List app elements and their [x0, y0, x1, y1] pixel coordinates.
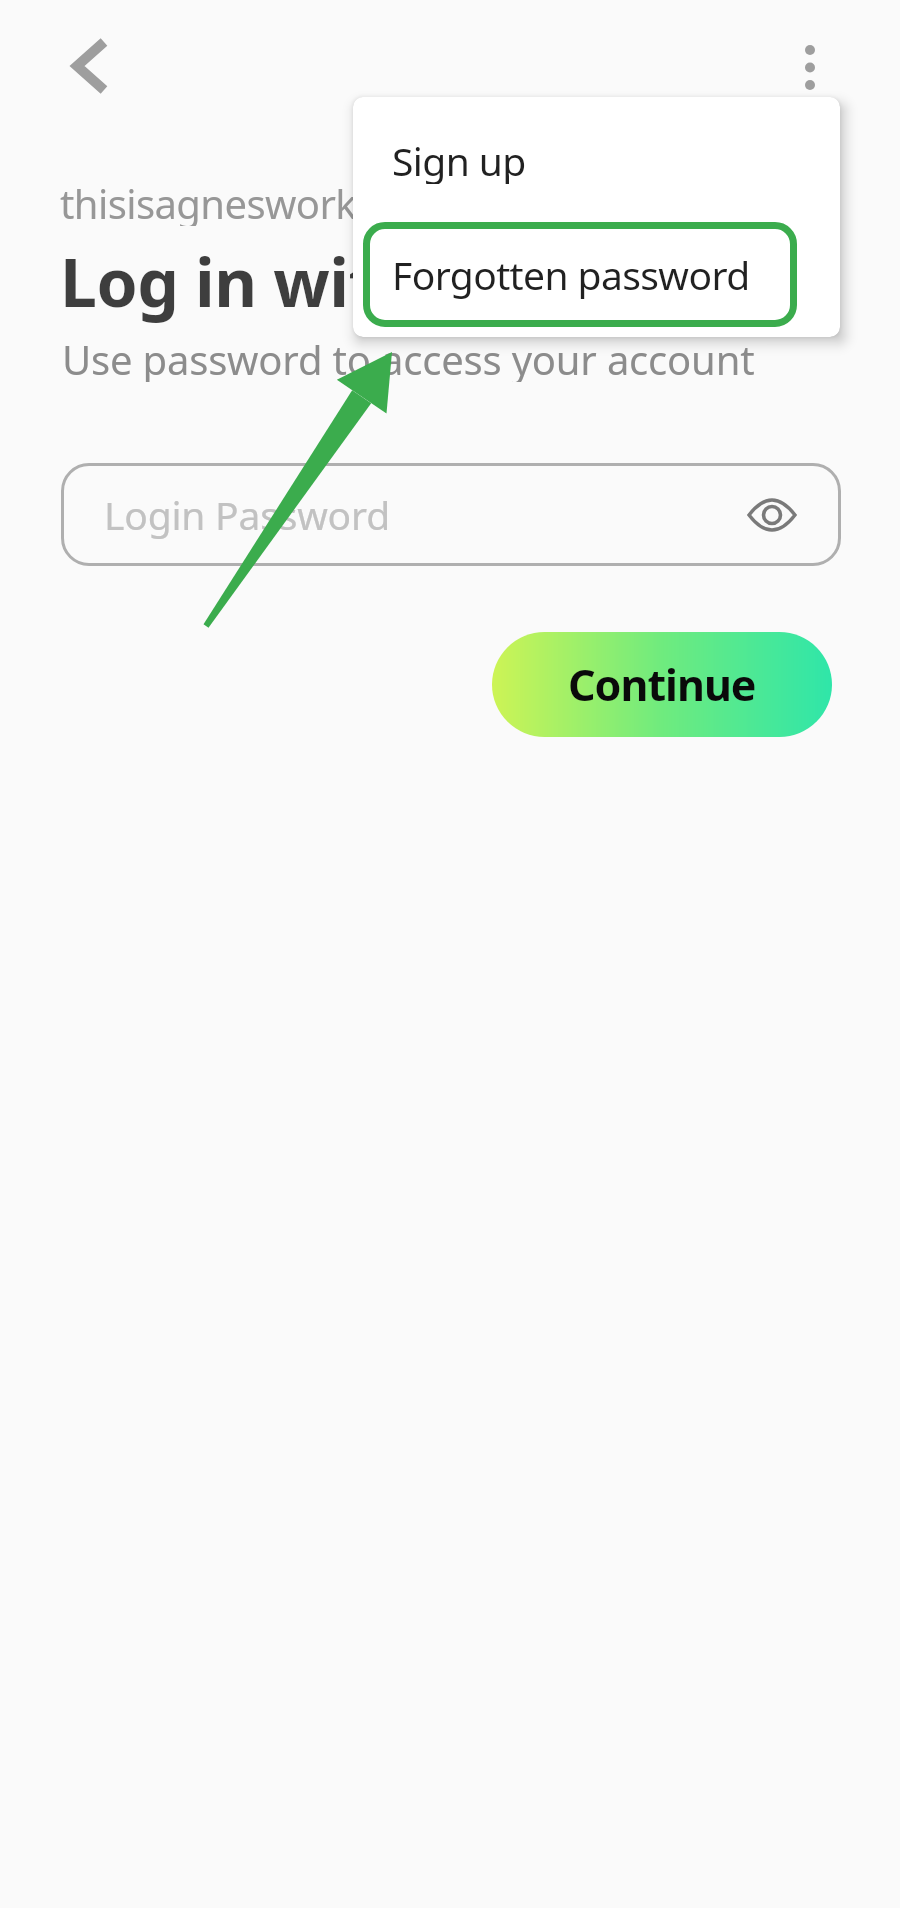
- staticText: thisisagnesworking: [60, 176, 414, 226]
- button[interactable]: Forgotten password: [363, 222, 797, 327]
- button[interactable]: Continue: [492, 632, 832, 737]
- staticText: Sign up: [392, 134, 526, 184]
- button[interactable]: [785, 30, 835, 105]
- staticText: Login Password: [104, 488, 390, 541]
- staticText: Forgotten password: [392, 248, 750, 301]
- staticText: Log in with password: [60, 236, 747, 326]
- button[interactable]: [60, 30, 120, 100]
- staticText: Continue: [568, 655, 756, 714]
- button[interactable]: Login Password: [61, 463, 841, 566]
- staticText: Use password to access your account: [62, 332, 755, 382]
- button[interactable]: Sign up: [392, 134, 526, 184]
